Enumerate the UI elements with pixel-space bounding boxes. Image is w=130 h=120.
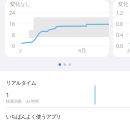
staticText: 3 bbox=[126, 47, 129, 54]
staticText: 8 bbox=[12, 31, 15, 38]
staticText: 0.0 bbox=[116, 42, 123, 49]
staticText: 16 bbox=[9, 20, 15, 27]
staticText: 変化 bbox=[118, 1, 128, 8]
staticText: 0 bbox=[12, 42, 15, 49]
staticText: 3 bbox=[18, 47, 21, 54]
staticText: 検索回数・43 時間 bbox=[6, 99, 39, 104]
staticText: 変化なし bbox=[10, 1, 30, 8]
staticText: 0.8 bbox=[116, 20, 123, 27]
staticText: 24 bbox=[9, 9, 15, 16]
staticText: リアルタイム bbox=[6, 80, 36, 86]
staticText: 4月 bbox=[78, 47, 86, 54]
staticText: 1 bbox=[6, 91, 9, 98]
staticText: 1.2 bbox=[116, 9, 123, 16]
staticText: 0.4 bbox=[116, 31, 123, 38]
staticText: いちばんよく使うアプリ bbox=[6, 113, 61, 120]
